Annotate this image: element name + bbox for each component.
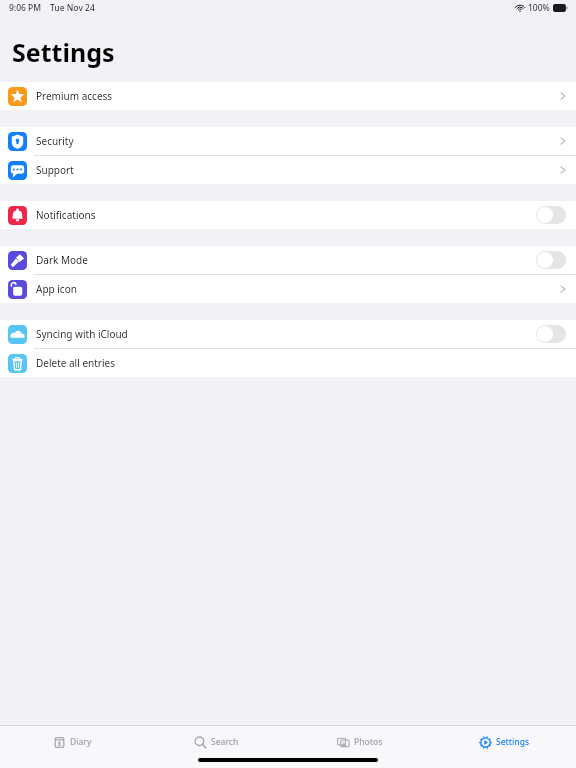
staticText: Settings <box>496 736 530 748</box>
staticText: Support <box>36 163 74 177</box>
button[interactable]: Search <box>144 733 288 751</box>
button[interactable]: Diary <box>0 733 144 751</box>
staticText: Dark Mode <box>36 253 88 267</box>
staticText: Settings <box>12 35 115 69</box>
staticText: Tue Nov 24 <box>50 2 95 14</box>
button[interactable]: Premium access <box>0 82 576 110</box>
staticText: Premium access <box>36 89 113 103</box>
button[interactable]: Toggle <box>536 206 566 224</box>
button[interactable]: Dark Mode <box>0 246 576 274</box>
button[interactable]: App icon <box>0 275 576 303</box>
staticText: Notifications <box>36 208 96 222</box>
button[interactable]: Support <box>0 156 576 184</box>
button[interactable]: Notifications <box>0 201 576 229</box>
staticText: Security <box>36 134 74 148</box>
staticText: 9:06 PM <box>9 2 42 14</box>
button[interactable]: Toggle <box>536 251 566 269</box>
staticText: Diary <box>70 736 92 748</box>
staticText: Search <box>211 736 239 748</box>
button[interactable]: Delete all entries <box>0 349 576 377</box>
staticText: Syncing with iCloud <box>36 327 128 341</box>
staticText: 100% <box>528 2 550 14</box>
button[interactable]: Photos <box>288 733 432 751</box>
staticText: Delete all entries <box>36 356 115 370</box>
button[interactable]: Security <box>0 127 576 155</box>
button[interactable]: Settings <box>432 733 576 751</box>
button[interactable]: Toggle <box>536 325 566 343</box>
staticText: Photos <box>354 736 383 748</box>
button[interactable]: Syncing with iCloud <box>0 320 576 348</box>
staticText: App icon <box>36 282 77 296</box>
